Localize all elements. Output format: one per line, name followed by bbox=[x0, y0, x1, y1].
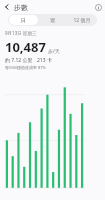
staticText: 213 卡 bbox=[37, 57, 52, 64]
staticText: 12 個月 bbox=[73, 17, 91, 24]
staticText: 每日目標值達成率 87% bbox=[5, 65, 46, 70]
staticText: 日 bbox=[21, 17, 26, 23]
button[interactable]: Info bbox=[91, 0, 105, 14]
button[interactable]: 週 bbox=[38, 15, 67, 25]
staticText: 10,487 bbox=[5, 38, 46, 56]
button[interactable]: Back bbox=[0, 0, 14, 14]
button[interactable]: 日 bbox=[9, 15, 38, 25]
staticText: 步/天 bbox=[48, 48, 60, 55]
button[interactable]: 12 個月 bbox=[67, 15, 96, 25]
staticText: 9月13日 星期三 bbox=[5, 30, 37, 36]
staticText: 步數 bbox=[14, 3, 28, 12]
staticText: 週 bbox=[50, 17, 55, 23]
staticText: 約 7.12 公里 bbox=[5, 57, 33, 64]
